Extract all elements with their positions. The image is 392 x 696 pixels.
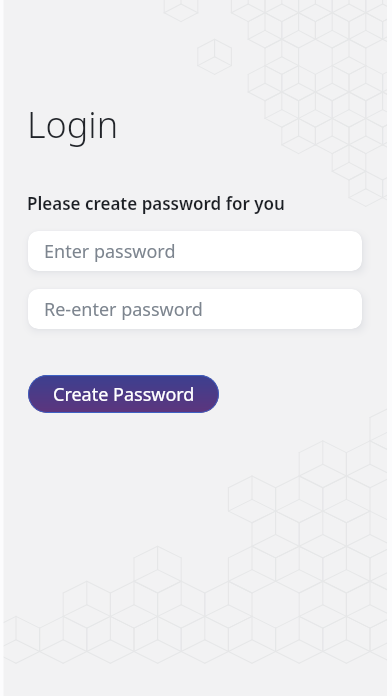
staticText: Create Password bbox=[53, 382, 195, 407]
button[interactable]: Re-enter password bbox=[28, 289, 362, 329]
staticText: Please create password for you bbox=[27, 192, 285, 215]
button[interactable]: Enter password bbox=[28, 231, 362, 271]
staticText: Re-enter password bbox=[44, 297, 203, 322]
staticText: Enter password bbox=[44, 239, 176, 264]
button[interactable]: Create Password bbox=[28, 375, 219, 413]
staticText: Login bbox=[27, 100, 119, 149]
